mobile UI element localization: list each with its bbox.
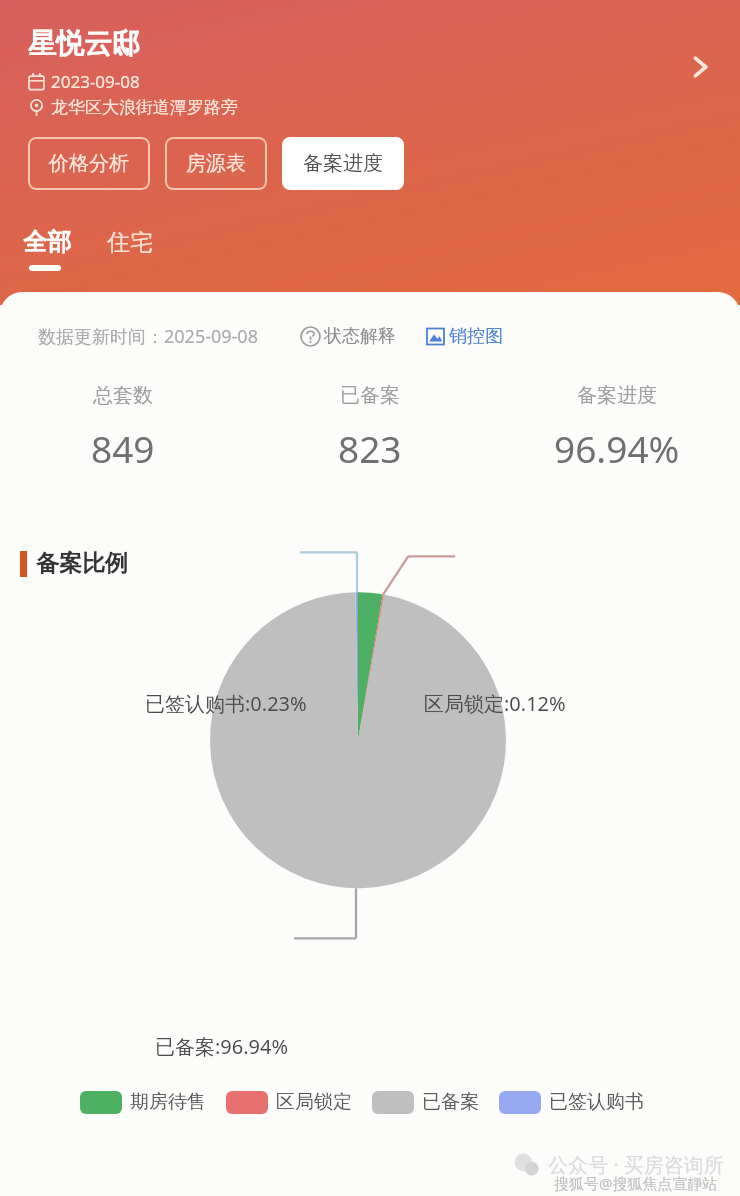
staticText: 数据更新时间：2025-09-08 xyxy=(38,324,258,349)
staticText: 849 xyxy=(91,423,155,473)
staticText: 已备案:96.94% xyxy=(155,1033,289,1060)
staticText: 已备案 xyxy=(422,1090,479,1114)
staticText: 住宅 xyxy=(107,228,153,257)
staticText: 龙华区大浪街道潭罗路旁 xyxy=(51,97,238,118)
staticText: 823 xyxy=(338,423,402,473)
staticText: 区局锁定 xyxy=(276,1090,352,1114)
button[interactable]: 房源表 xyxy=(165,137,267,190)
button[interactable]: 已签认购书 xyxy=(499,1090,644,1114)
staticText: 已备案 xyxy=(340,383,400,408)
button[interactable]: 已备案 xyxy=(372,1090,479,1114)
staticText: 备案进度 xyxy=(577,383,657,408)
staticText: 公众号 · 买房咨询所 xyxy=(548,1151,724,1178)
button[interactable]: 价格分析 xyxy=(28,137,150,190)
staticText: 全部 xyxy=(23,227,71,257)
button[interactable]: 区局锁定 xyxy=(226,1090,352,1114)
button[interactable]: 住宅 xyxy=(102,228,158,257)
staticText: 销控图 xyxy=(449,325,503,348)
staticText: 已签认购书 xyxy=(549,1090,644,1114)
staticText: 期房待售 xyxy=(130,1090,206,1114)
button[interactable]: 状态解释 xyxy=(300,325,396,348)
staticText: 房源表 xyxy=(186,151,246,176)
staticText: 区局锁定:0.12% xyxy=(424,690,566,717)
staticText: 搜狐号@搜狐焦点宣靜站 xyxy=(554,1173,718,1193)
staticText: 星悦云邸 xyxy=(28,26,140,61)
staticText: 2023-09-08 xyxy=(51,70,140,93)
button[interactable]: 备案进度 xyxy=(282,137,404,190)
staticText: 备案比例 xyxy=(36,549,128,578)
button[interactable]: 项目详情 xyxy=(684,50,718,84)
button[interactable]: 销控图 xyxy=(426,325,503,348)
staticText: 备案进度 xyxy=(303,151,383,176)
staticText: 96.94% xyxy=(554,423,680,473)
button[interactable]: 全部 xyxy=(18,227,76,257)
staticText: 状态解释 xyxy=(324,325,396,348)
staticText: 总套数 xyxy=(93,383,153,408)
staticText: 价格分析 xyxy=(49,151,129,176)
button[interactable]: 期房待售 xyxy=(80,1090,206,1114)
staticText: 已签认购书:0.23% xyxy=(145,690,307,717)
